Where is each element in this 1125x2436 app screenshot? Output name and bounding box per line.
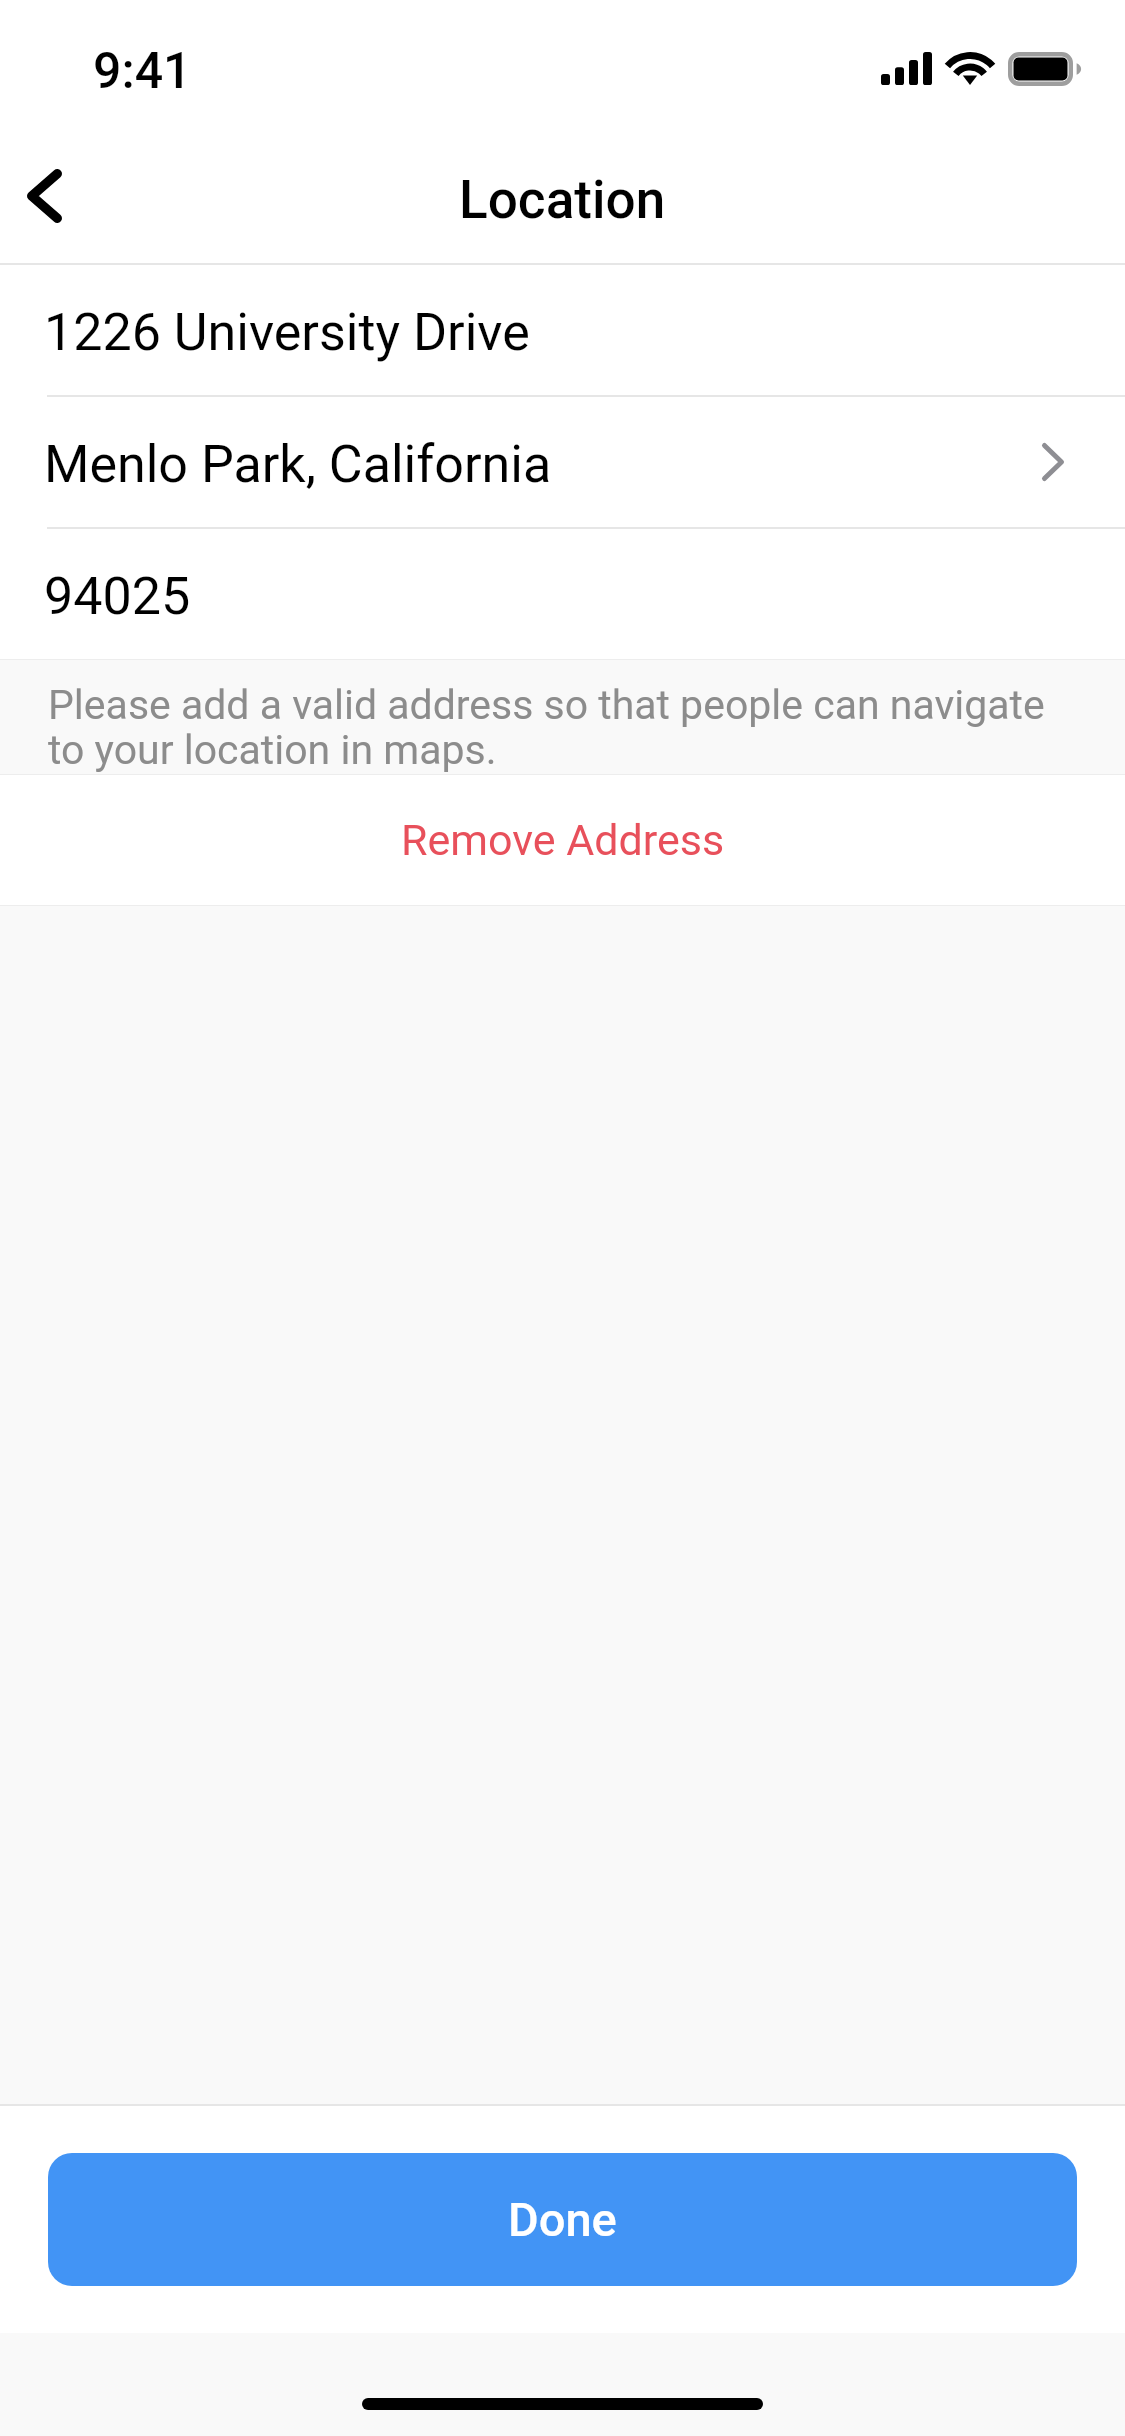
button[interactable]: 1226 University Drive <box>0 265 1125 395</box>
staticText: Location <box>459 169 666 231</box>
button[interactable]: Menlo Park, California <box>0 397 1125 527</box>
staticText: Done <box>508 2192 617 2247</box>
button[interactable]: 94025 <box>0 529 1125 659</box>
staticText: Please add a valid address so that peopl… <box>48 681 1045 774</box>
staticText: Menlo Park, California <box>44 434 552 495</box>
button[interactable]: Back <box>0 120 112 263</box>
staticText: 9:41 <box>93 42 192 101</box>
staticText: 1226 University Drive <box>44 302 530 363</box>
staticText: 94025 <box>44 566 191 627</box>
button[interactable]: Remove Address <box>0 774 1125 905</box>
staticText: Remove Address <box>401 815 725 865</box>
button[interactable]: Done <box>48 2153 1077 2286</box>
